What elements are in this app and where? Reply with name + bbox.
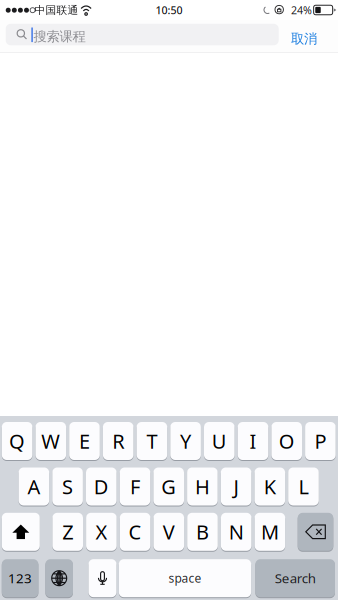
button[interactable]: N [221, 513, 251, 551]
staticText: 123 [8, 569, 32, 587]
staticText: D [94, 473, 109, 500]
staticText: Z [62, 518, 73, 545]
button[interactable]: O [271, 422, 302, 460]
staticText: N [229, 518, 244, 545]
staticText: M [261, 518, 279, 545]
staticText: T [146, 428, 157, 454]
staticText: 10:50 [155, 3, 182, 17]
button[interactable]: E [69, 422, 100, 460]
button[interactable]: J [221, 467, 251, 505]
staticText: R [112, 428, 124, 454]
button[interactable]: F [120, 467, 150, 505]
button[interactable]: B [187, 513, 218, 551]
staticText: G [161, 473, 176, 500]
staticText: F [130, 473, 140, 500]
button[interactable]: Delete [298, 513, 333, 551]
staticText: space [168, 570, 201, 586]
button[interactable]: 取消 [284, 27, 323, 50]
button[interactable]: G [153, 467, 184, 505]
button[interactable]: Z [52, 513, 83, 551]
button[interactable]: R [103, 422, 133, 460]
button[interactable]: V [153, 513, 184, 551]
staticText: V [163, 518, 175, 545]
button[interactable]: H [187, 467, 218, 505]
button[interactable]: W [35, 422, 66, 460]
staticText: U [212, 428, 227, 454]
button[interactable]: S [52, 467, 83, 505]
staticText: W [41, 428, 60, 454]
staticText: P [314, 428, 326, 454]
button[interactable]: X [86, 513, 117, 551]
button[interactable]: M [255, 513, 285, 551]
staticText: Y [180, 428, 191, 454]
staticText: X [95, 518, 107, 545]
button[interactable]: Shift [2, 513, 40, 551]
button[interactable]: I [238, 422, 268, 460]
staticText: O [279, 428, 295, 454]
button[interactable]: Dictate [88, 559, 116, 597]
staticText: E [79, 428, 90, 454]
button[interactable]: space [119, 559, 251, 597]
button[interactable]: P [305, 422, 336, 460]
staticText: 24% [291, 3, 312, 17]
button[interactable]: Next keyboard [45, 559, 73, 597]
button[interactable]: Q [2, 422, 32, 460]
staticText: J [234, 473, 239, 500]
staticText: B [196, 518, 209, 545]
button[interactable]: Y [170, 422, 201, 460]
staticText: C [129, 518, 142, 545]
button[interactable]: T [137, 422, 167, 460]
button[interactable]: L [288, 467, 319, 505]
button[interactable]: C [120, 513, 150, 551]
button[interactable]: A [19, 467, 49, 505]
staticText: 取消 [291, 30, 317, 47]
staticText: Q [9, 428, 25, 454]
staticText: I [249, 428, 256, 454]
staticText: L [298, 473, 308, 500]
staticText: H [195, 473, 210, 500]
button[interactable]: Numbers [2, 559, 38, 597]
button[interactable]: Search [255, 559, 335, 597]
staticText: A [27, 473, 40, 500]
button[interactable]: U [204, 422, 235, 460]
button[interactable]: K [254, 467, 285, 505]
staticText: 搜索课程 [34, 28, 86, 45]
staticText: K [264, 473, 276, 500]
staticText: S [62, 473, 73, 500]
staticText: 中国联通 [35, 4, 79, 17]
staticText: Search [275, 569, 316, 587]
button[interactable]: D [86, 467, 117, 505]
